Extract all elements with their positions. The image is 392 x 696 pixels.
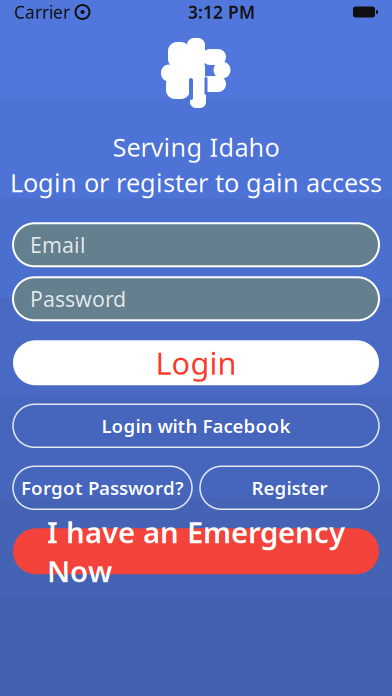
- staticText: Serving Idaho: [112, 130, 279, 164]
- staticText: Email: [30, 231, 86, 259]
- button[interactable]: Email: [13, 223, 379, 266]
- button[interactable]: Login with Facebook: [13, 404, 379, 447]
- button[interactable]: Register: [200, 466, 379, 509]
- button[interactable]: Password: [13, 277, 379, 320]
- button[interactable]: Login: [13, 340, 379, 385]
- button[interactable]: I have an Emergency Now: [13, 528, 379, 574]
- button[interactable]: Forgot Password?: [13, 466, 192, 509]
- staticText: Password: [30, 285, 126, 313]
- staticText: Register: [251, 475, 327, 500]
- staticText: Carrier: [14, 0, 70, 23]
- staticText: Login with Facebook: [101, 413, 290, 438]
- staticText: Login or register to gain access: [10, 166, 382, 199]
- staticText: 3:12 PM: [188, 0, 255, 23]
- staticText: I have an Emergency Now: [47, 512, 345, 590]
- staticText: Login: [155, 342, 236, 383]
- staticText: Forgot Password?: [21, 475, 184, 500]
